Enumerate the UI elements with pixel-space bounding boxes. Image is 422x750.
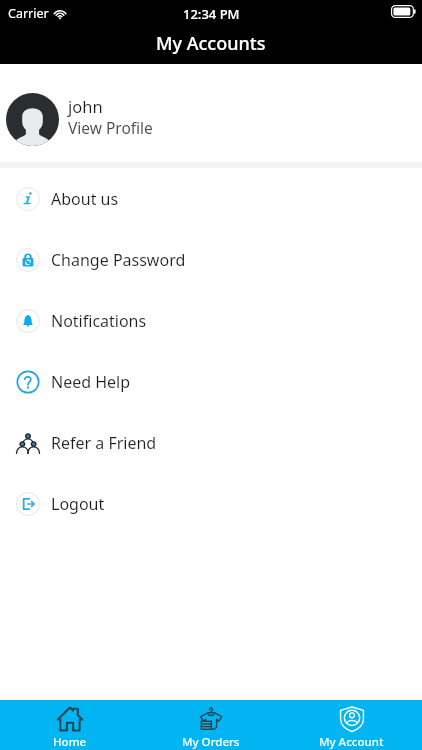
staticText: My Accounts (156, 31, 266, 56)
button[interactable]: My Orders (140, 700, 281, 750)
button[interactable]: Logout (0, 473, 422, 534)
staticText: Home (53, 734, 87, 750)
staticText: Logout (51, 493, 105, 515)
staticText: Refer a Friend (51, 432, 157, 454)
staticText: Need Help (51, 371, 131, 393)
staticText: john (68, 95, 103, 117)
button[interactable]: My Account (281, 700, 422, 750)
staticText: About us (51, 188, 119, 210)
button[interactable]: About us (0, 168, 422, 229)
staticText: View Profile (68, 117, 153, 138)
staticText: Carrier (8, 5, 49, 22)
staticText: My Account (319, 734, 384, 750)
staticText: Change Password (51, 249, 186, 271)
button[interactable]: Refer a Friend (0, 412, 422, 473)
button[interactable]: Change Password (0, 229, 422, 290)
button[interactable]: john (0, 64, 422, 162)
staticText: My Orders (182, 734, 240, 750)
button[interactable]: Need Help (0, 351, 422, 412)
button[interactable]: Notifications (0, 290, 422, 351)
staticText: Notifications (51, 310, 147, 332)
staticText: 12:34 PM (183, 5, 240, 23)
button[interactable]: Home (0, 700, 140, 750)
